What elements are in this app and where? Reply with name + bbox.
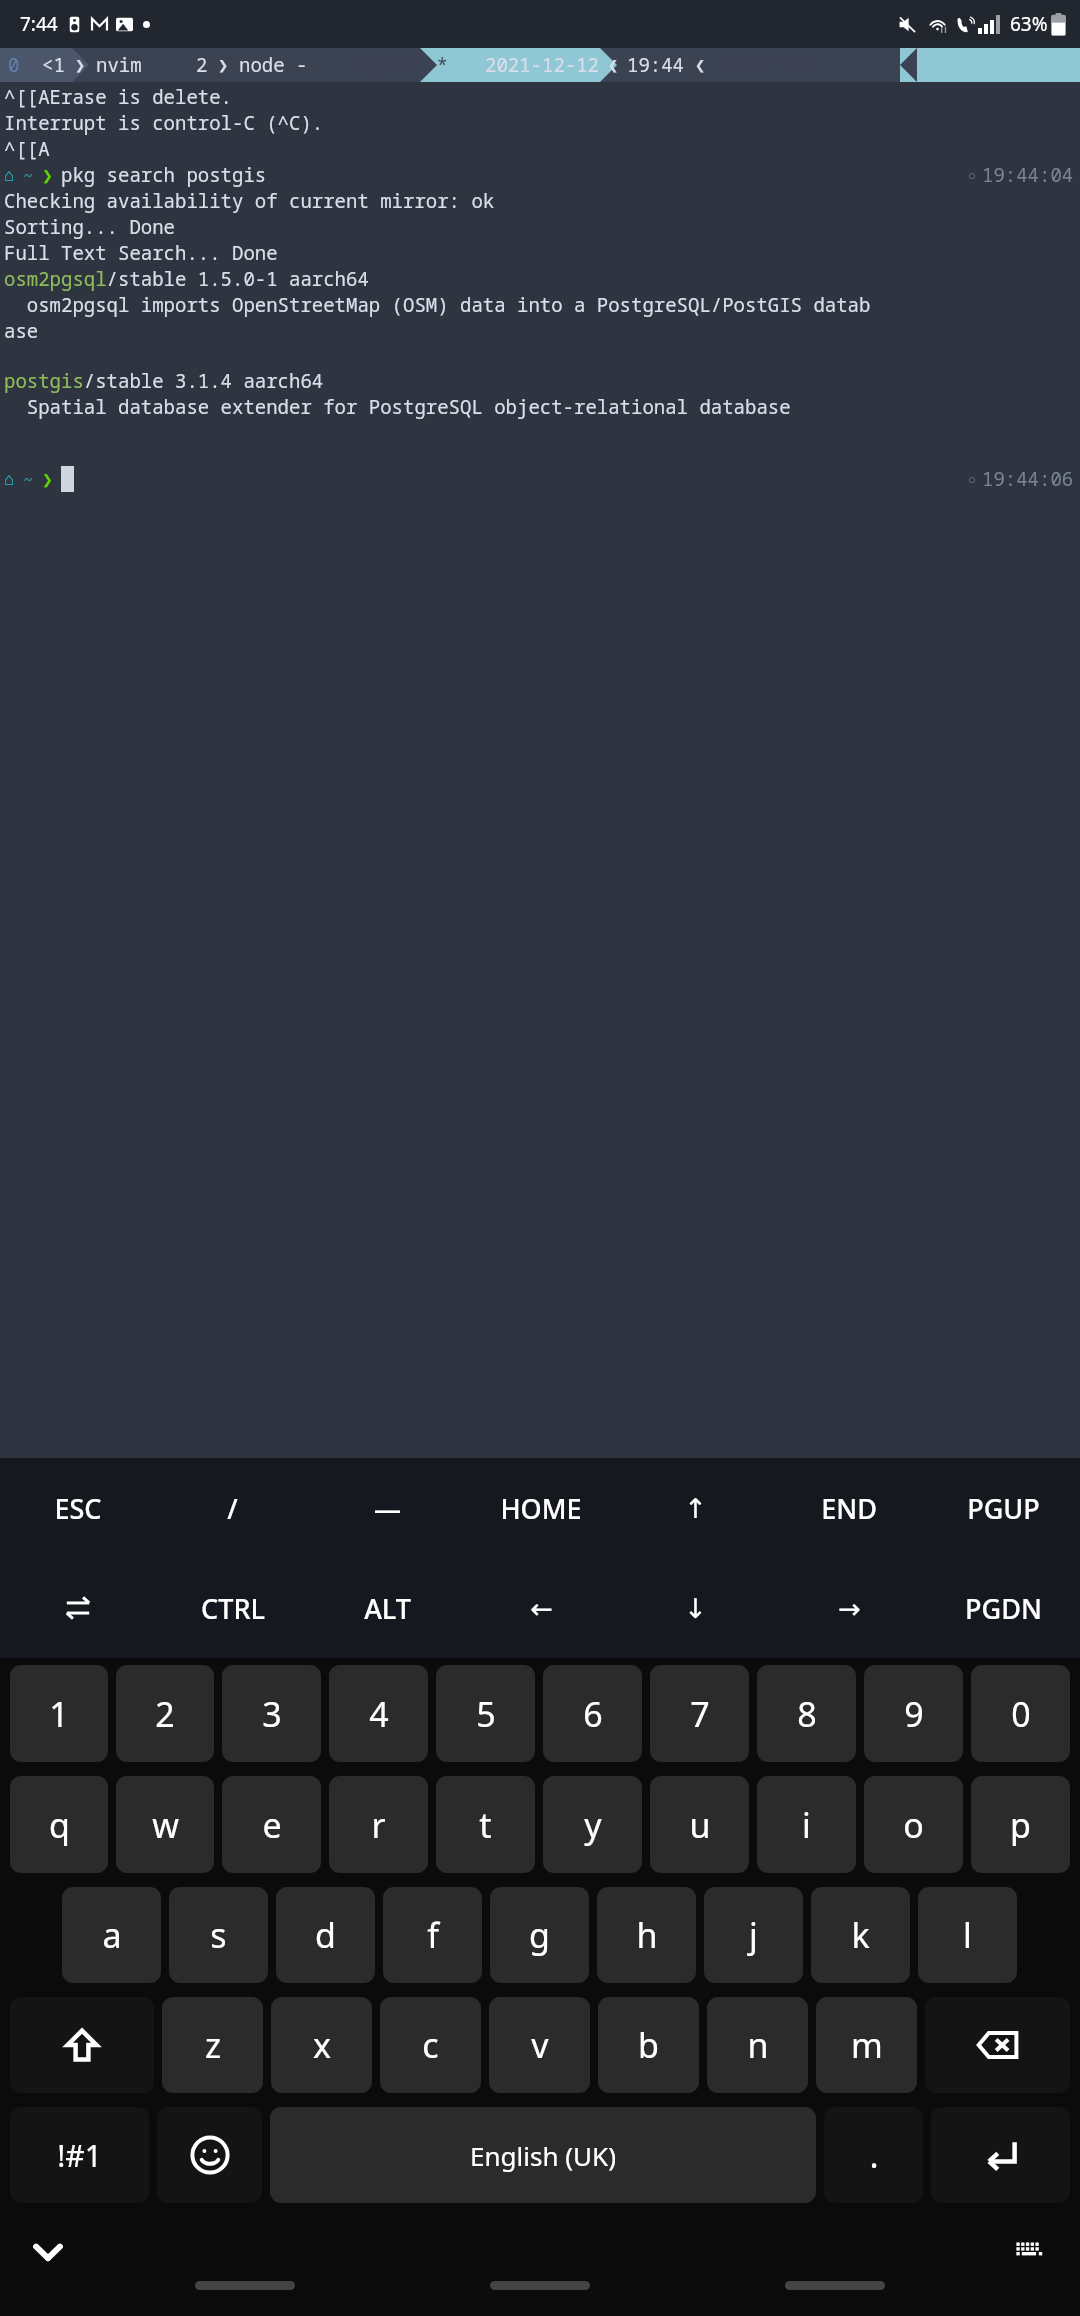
staticText: English (UK) [470, 2138, 616, 2173]
button[interactable]: s [169, 1887, 268, 1983]
button[interactable]: h [597, 1887, 696, 1983]
button[interactable]: . [824, 2107, 923, 2203]
staticText: g [529, 1912, 550, 1958]
button[interactable]: 7 [650, 1665, 749, 1762]
button[interactable]: Emoji [157, 2107, 262, 2203]
button[interactable]: 6 [543, 1665, 642, 1762]
button[interactable]: Enter [931, 2107, 1070, 2203]
staticText: ❯ [218, 55, 229, 75]
staticText: k [851, 1912, 870, 1958]
staticText: ❯ [42, 469, 53, 490]
button[interactable]: 0 [971, 1665, 1070, 1762]
button[interactable]: ↑ [618, 1458, 772, 1558]
button[interactable]: n [707, 1997, 808, 2093]
staticText: Interrupt is control-C (^C). [4, 110, 324, 136]
button[interactable]: x [271, 1997, 372, 2093]
staticText: h [636, 1912, 658, 1958]
button[interactable]: PGUP [926, 1458, 1080, 1558]
button[interactable]: Nav [195, 2281, 295, 2290]
button[interactable]: → [772, 1558, 926, 1658]
button[interactable]: PGDN [926, 1558, 1080, 1658]
button[interactable]: a [62, 1887, 161, 1983]
button[interactable]: Hide keyboard [22, 2226, 74, 2278]
button[interactable]: 3 [222, 1665, 321, 1762]
button[interactable]: ESC [0, 1458, 155, 1558]
button[interactable]: i [757, 1776, 856, 1873]
button[interactable]: e [222, 1776, 321, 1873]
button[interactable]: 2 [116, 1665, 214, 1762]
button[interactable]: Backspace [925, 1997, 1070, 2093]
button[interactable]: 5 [436, 1665, 535, 1762]
button[interactable]: v [489, 1997, 590, 2093]
button[interactable]: ALT [310, 1558, 464, 1658]
button[interactable]: ← [464, 1558, 618, 1658]
button[interactable]: q [10, 1776, 108, 1873]
staticText: ALT [364, 1590, 411, 1627]
staticText: node - [239, 52, 308, 78]
staticText: ❯ [75, 55, 86, 75]
button[interactable]: Tab [0, 1558, 155, 1658]
button[interactable]: — [310, 1458, 464, 1558]
staticText: osm2pgsql imports OpenStreetMap (OSM) da… [4, 292, 871, 318]
button[interactable]: 4 [329, 1665, 428, 1762]
staticText: <1 [42, 52, 65, 78]
staticText: d [315, 1912, 336, 1958]
button[interactable]: r [329, 1776, 428, 1873]
staticText: 4 [369, 1691, 389, 1737]
staticText: p [1010, 1802, 1031, 1848]
staticText: 8 [797, 1691, 817, 1737]
staticText: l [963, 1912, 972, 1958]
staticText: 6 [583, 1691, 603, 1737]
staticText: ^[[A [4, 136, 50, 162]
staticText: CTRL [201, 1590, 265, 1627]
staticText: HOME [500, 1490, 582, 1527]
button[interactable]: t [436, 1776, 535, 1873]
button[interactable]: y [543, 1776, 642, 1873]
button[interactable]: u [650, 1776, 749, 1873]
button[interactable]: z [162, 1997, 263, 2093]
button[interactable]: k [811, 1887, 910, 1983]
staticText: s [210, 1912, 227, 1958]
staticText: q [49, 1802, 70, 1848]
staticText: ⌂ [4, 165, 15, 185]
button[interactable]: w [116, 1776, 214, 1873]
button[interactable]: g [490, 1887, 589, 1983]
staticText: f [427, 1912, 439, 1958]
button[interactable]: English (UK) [270, 2107, 816, 2203]
button[interactable]: Nav [490, 2281, 590, 2290]
button[interactable]: 8 [757, 1665, 856, 1762]
staticText: PGUP [967, 1490, 1040, 1527]
staticText: 63% [1010, 11, 1048, 37]
button[interactable]: ↓ [618, 1558, 772, 1658]
staticText: ❮ [695, 55, 706, 75]
staticText: Sorting... Done [4, 214, 176, 240]
button[interactable]: 1 [10, 1665, 108, 1762]
button[interactable]: f [383, 1887, 482, 1983]
staticText: zsh * [391, 52, 449, 78]
button[interactable]: END [772, 1458, 926, 1558]
staticText: ❮ [608, 55, 619, 75]
button[interactable]: Nav [785, 2281, 885, 2290]
button[interactable]: m [816, 1997, 917, 2093]
staticText: r [371, 1802, 386, 1848]
button[interactable]: HOME [464, 1458, 618, 1558]
button[interactable]: 9 [864, 1665, 963, 1762]
button[interactable]: b [598, 1997, 699, 2093]
button[interactable]: CTRL [155, 1558, 310, 1658]
button[interactable]: Shift [10, 1997, 154, 2093]
button[interactable]: c [380, 1997, 481, 2093]
staticText: ○ [968, 166, 976, 184]
button[interactable]: p [971, 1776, 1070, 1873]
button[interactable]: o [864, 1776, 963, 1873]
button[interactable]: !#1 [10, 2107, 149, 2203]
button[interactable]: d [276, 1887, 375, 1983]
staticText: 9 [904, 1691, 924, 1737]
button[interactable]: Switch keyboard [1006, 2226, 1058, 2278]
staticText: — [374, 1490, 401, 1527]
button[interactable]: / [155, 1458, 310, 1558]
staticText: 2 [155, 1691, 175, 1737]
staticText: Checking availability of current mirror:… [4, 188, 495, 214]
button[interactable]: j [704, 1887, 803, 1983]
button[interactable]: l [918, 1887, 1017, 1983]
